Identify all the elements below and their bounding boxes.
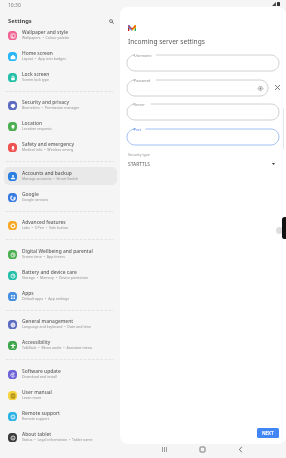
button[interactable]: Accessibility	[4, 336, 117, 354]
staticText: Software update	[22, 368, 61, 375]
button[interactable]: Advanced features	[4, 216, 117, 234]
button[interactable]: Location	[4, 117, 117, 135]
button[interactable]: Safety and emergency	[4, 138, 117, 156]
staticText: Battery and device care	[22, 269, 77, 276]
button[interactable]: Accounts and backup	[4, 167, 117, 185]
staticText: Password	[134, 78, 151, 83]
staticText: NEXT	[262, 430, 274, 436]
button[interactable]: Back	[234, 443, 246, 455]
staticText: 10:30	[8, 2, 21, 9]
staticText: Username	[134, 53, 152, 58]
button[interactable]: General management	[4, 315, 117, 333]
button[interactable]: Apps	[4, 287, 117, 305]
staticText: Lock screen	[22, 71, 50, 78]
button[interactable]: Home screen	[4, 47, 117, 65]
button[interactable]: Battery and device care	[4, 266, 117, 284]
staticText: Accessibility	[22, 339, 51, 346]
staticText: Default apps • App settings	[22, 296, 69, 301]
staticText: Apps	[22, 290, 34, 297]
staticText: Learn more	[22, 395, 42, 400]
staticText: Google services	[22, 197, 49, 202]
staticText: STARTTLS	[128, 161, 151, 168]
staticText: Language and keyboard • Date and time	[22, 324, 91, 329]
staticText: Screen lock type	[22, 77, 50, 82]
staticText: Home screen	[22, 50, 53, 57]
staticText: Download and install	[22, 374, 57, 379]
staticText: User manual	[22, 389, 52, 396]
button[interactable]: Digital Wellbeing and parental controls	[4, 245, 117, 263]
staticText: Biometrics • Permission manager	[22, 105, 80, 110]
staticText: Google	[22, 191, 39, 198]
button[interactable]: STARTTLS	[127, 157, 279, 171]
staticText: Security type	[128, 152, 150, 157]
button[interactable]: Edge panel	[282, 217, 286, 239]
button[interactable]: Clear password	[272, 82, 282, 92]
button[interactable]: Remote support	[4, 407, 117, 425]
staticText: Server	[134, 102, 145, 107]
button[interactable]: Lock screen	[4, 68, 117, 86]
staticText: Status • Legal information • Tablet name	[22, 437, 93, 442]
staticText: TalkBack • Mono audio • Assistant menu	[22, 345, 93, 350]
button[interactable]: Security and privacy	[4, 96, 117, 114]
staticText: Remote support	[22, 416, 50, 421]
staticText: Advanced features	[22, 219, 66, 226]
staticText: Labs • S Pen • Side button	[22, 225, 69, 230]
staticText: General management	[22, 318, 74, 325]
staticText: Wallpapers • Colour palette	[22, 35, 70, 40]
button[interactable]: NEXT	[257, 428, 279, 438]
staticText: Security and privacy	[22, 99, 70, 106]
button[interactable]: Software update	[4, 365, 117, 383]
staticText: Storage • Memory • Device protection	[22, 275, 89, 280]
staticText: Incoming server settings	[128, 37, 205, 46]
button[interactable]: User manual	[4, 386, 117, 404]
staticText: Safety and emergency	[22, 141, 75, 148]
button[interactable]: Home	[196, 443, 208, 455]
button[interactable]: Wallpaper and style	[4, 26, 117, 44]
staticText: Location	[22, 120, 43, 127]
staticText: Accounts and backup	[22, 170, 72, 177]
staticText: Settings	[8, 17, 32, 25]
staticText: Remote support	[22, 410, 60, 417]
staticText: Screen time • App timers	[22, 254, 65, 259]
button[interactable]: Search	[105, 15, 117, 27]
staticText: About tablet	[22, 431, 52, 438]
button[interactable]: Recents	[158, 443, 170, 455]
staticText: Wallpaper and style	[22, 29, 69, 36]
staticText: Layout • App icon badges	[22, 56, 66, 61]
staticText: Medical info • Wireless emerg	[22, 147, 74, 152]
staticText: Location requests	[22, 126, 52, 131]
staticText: Digital Wellbeing and parental controls	[22, 248, 113, 255]
staticText: Port	[134, 127, 142, 132]
staticText: Manage accounts • Smart Switch	[22, 176, 79, 181]
button[interactable]: Google	[4, 188, 117, 206]
button[interactable]: About tablet	[4, 428, 117, 446]
